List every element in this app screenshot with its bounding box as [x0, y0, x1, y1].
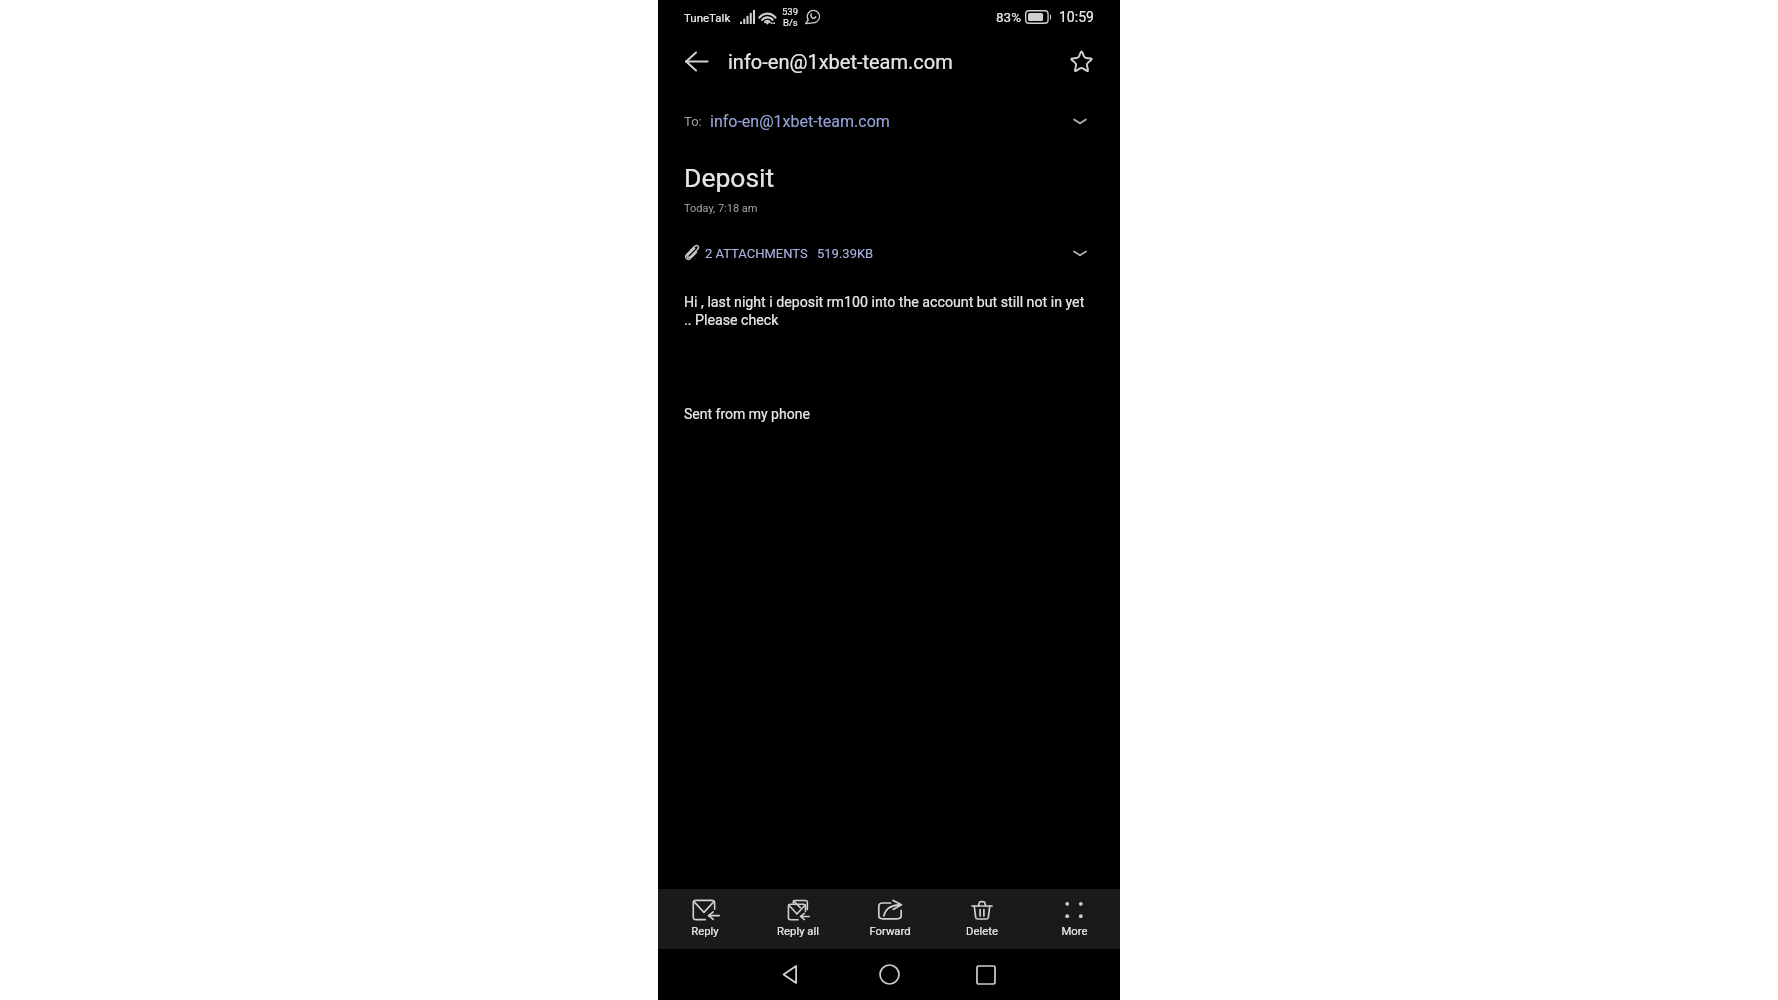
staticText: TuneTalk — [684, 11, 731, 24]
button[interactable]: Recents — [948, 949, 1024, 1000]
staticText: To: — [684, 114, 702, 129]
staticText: 10:59 — [1059, 9, 1094, 25]
button[interactable]: 2 ATTACHMENTS — [658, 238, 1120, 268]
button[interactable]: Delete — [936, 889, 1028, 949]
button[interactable]: Star — [1064, 44, 1098, 78]
staticText: B/s — [783, 17, 798, 28]
button[interactable]: Back — [752, 949, 828, 1000]
staticText: Sent from my phone — [684, 406, 810, 422]
button[interactable]: Home — [851, 949, 927, 1000]
button[interactable]: Reply all — [751, 889, 844, 949]
staticText: 539 — [782, 6, 799, 17]
staticText: Reply all — [777, 925, 819, 938]
staticText: Today, 7:18 am — [684, 202, 758, 215]
staticText: Hi , last night i deposit rm100 into the… — [684, 294, 1085, 329]
button[interactable]: To: — [658, 104, 1120, 138]
staticText: Reply — [691, 925, 719, 938]
staticText: More — [1061, 925, 1088, 938]
button[interactable]: Back — [680, 45, 712, 77]
button[interactable]: More — [1028, 889, 1120, 949]
staticText: 519.39KB — [817, 246, 874, 261]
staticText: Delete — [966, 925, 998, 938]
button[interactable]: Reply — [658, 889, 751, 949]
staticText: 2 ATTACHMENTS — [705, 246, 808, 261]
staticText: 83% — [996, 9, 1022, 25]
staticText: info-en@1xbet-team.com — [728, 50, 953, 73]
staticText: Forward — [869, 925, 911, 938]
staticText: info-en@1xbet-team.com — [710, 112, 890, 131]
staticText: Deposit — [684, 162, 775, 193]
button[interactable]: Forward — [844, 889, 936, 949]
